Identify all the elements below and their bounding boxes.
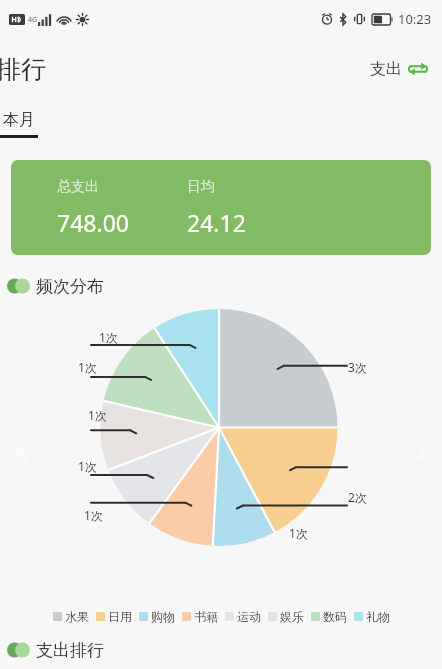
staticText: 礼物	[366, 609, 390, 624]
staticText: 日均	[187, 178, 215, 196]
staticText: 4G	[28, 15, 38, 25]
staticText: 3次	[348, 359, 367, 375]
staticText: 娱乐	[280, 609, 304, 624]
button[interactable]: 支出	[366, 53, 432, 85]
staticText: 总支出	[57, 178, 99, 196]
staticText: 书籍	[194, 609, 218, 624]
staticText: 1次	[78, 359, 97, 375]
staticText: 购物	[151, 609, 175, 624]
staticText: 1次	[289, 525, 308, 541]
button[interactable]: 频次分布	[0, 269, 442, 303]
staticText: 1次	[84, 507, 103, 523]
staticText: 1次	[99, 329, 118, 345]
staticText: 1次	[88, 407, 107, 423]
staticText: 10:23	[398, 10, 432, 28]
staticText: 频次分布	[36, 276, 104, 297]
staticText: 排行	[0, 54, 46, 85]
staticText: 支出排行	[36, 640, 104, 661]
staticText: 支出	[370, 59, 402, 79]
staticText: 数码	[323, 609, 347, 624]
staticText: 1次	[78, 458, 97, 474]
other: Switch expense or income	[408, 59, 428, 79]
staticText: 2次	[348, 489, 367, 505]
staticText: 水果	[65, 609, 89, 624]
staticText: 运动	[237, 609, 261, 624]
staticText: 24.12	[187, 207, 246, 238]
staticText: 748.00	[57, 207, 129, 238]
button[interactable]: 总支出	[11, 160, 431, 255]
staticText: 本月	[3, 110, 35, 130]
button[interactable]: 支出排行	[0, 633, 442, 667]
button[interactable]: 本月	[0, 110, 46, 138]
staticText: 日用	[108, 609, 132, 624]
